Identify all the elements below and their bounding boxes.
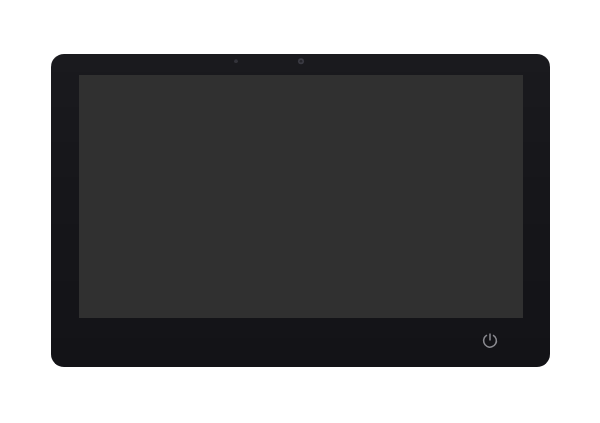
button[interactable]: Tablet device (51, 54, 550, 367)
button[interactable]: Power (476, 326, 504, 354)
